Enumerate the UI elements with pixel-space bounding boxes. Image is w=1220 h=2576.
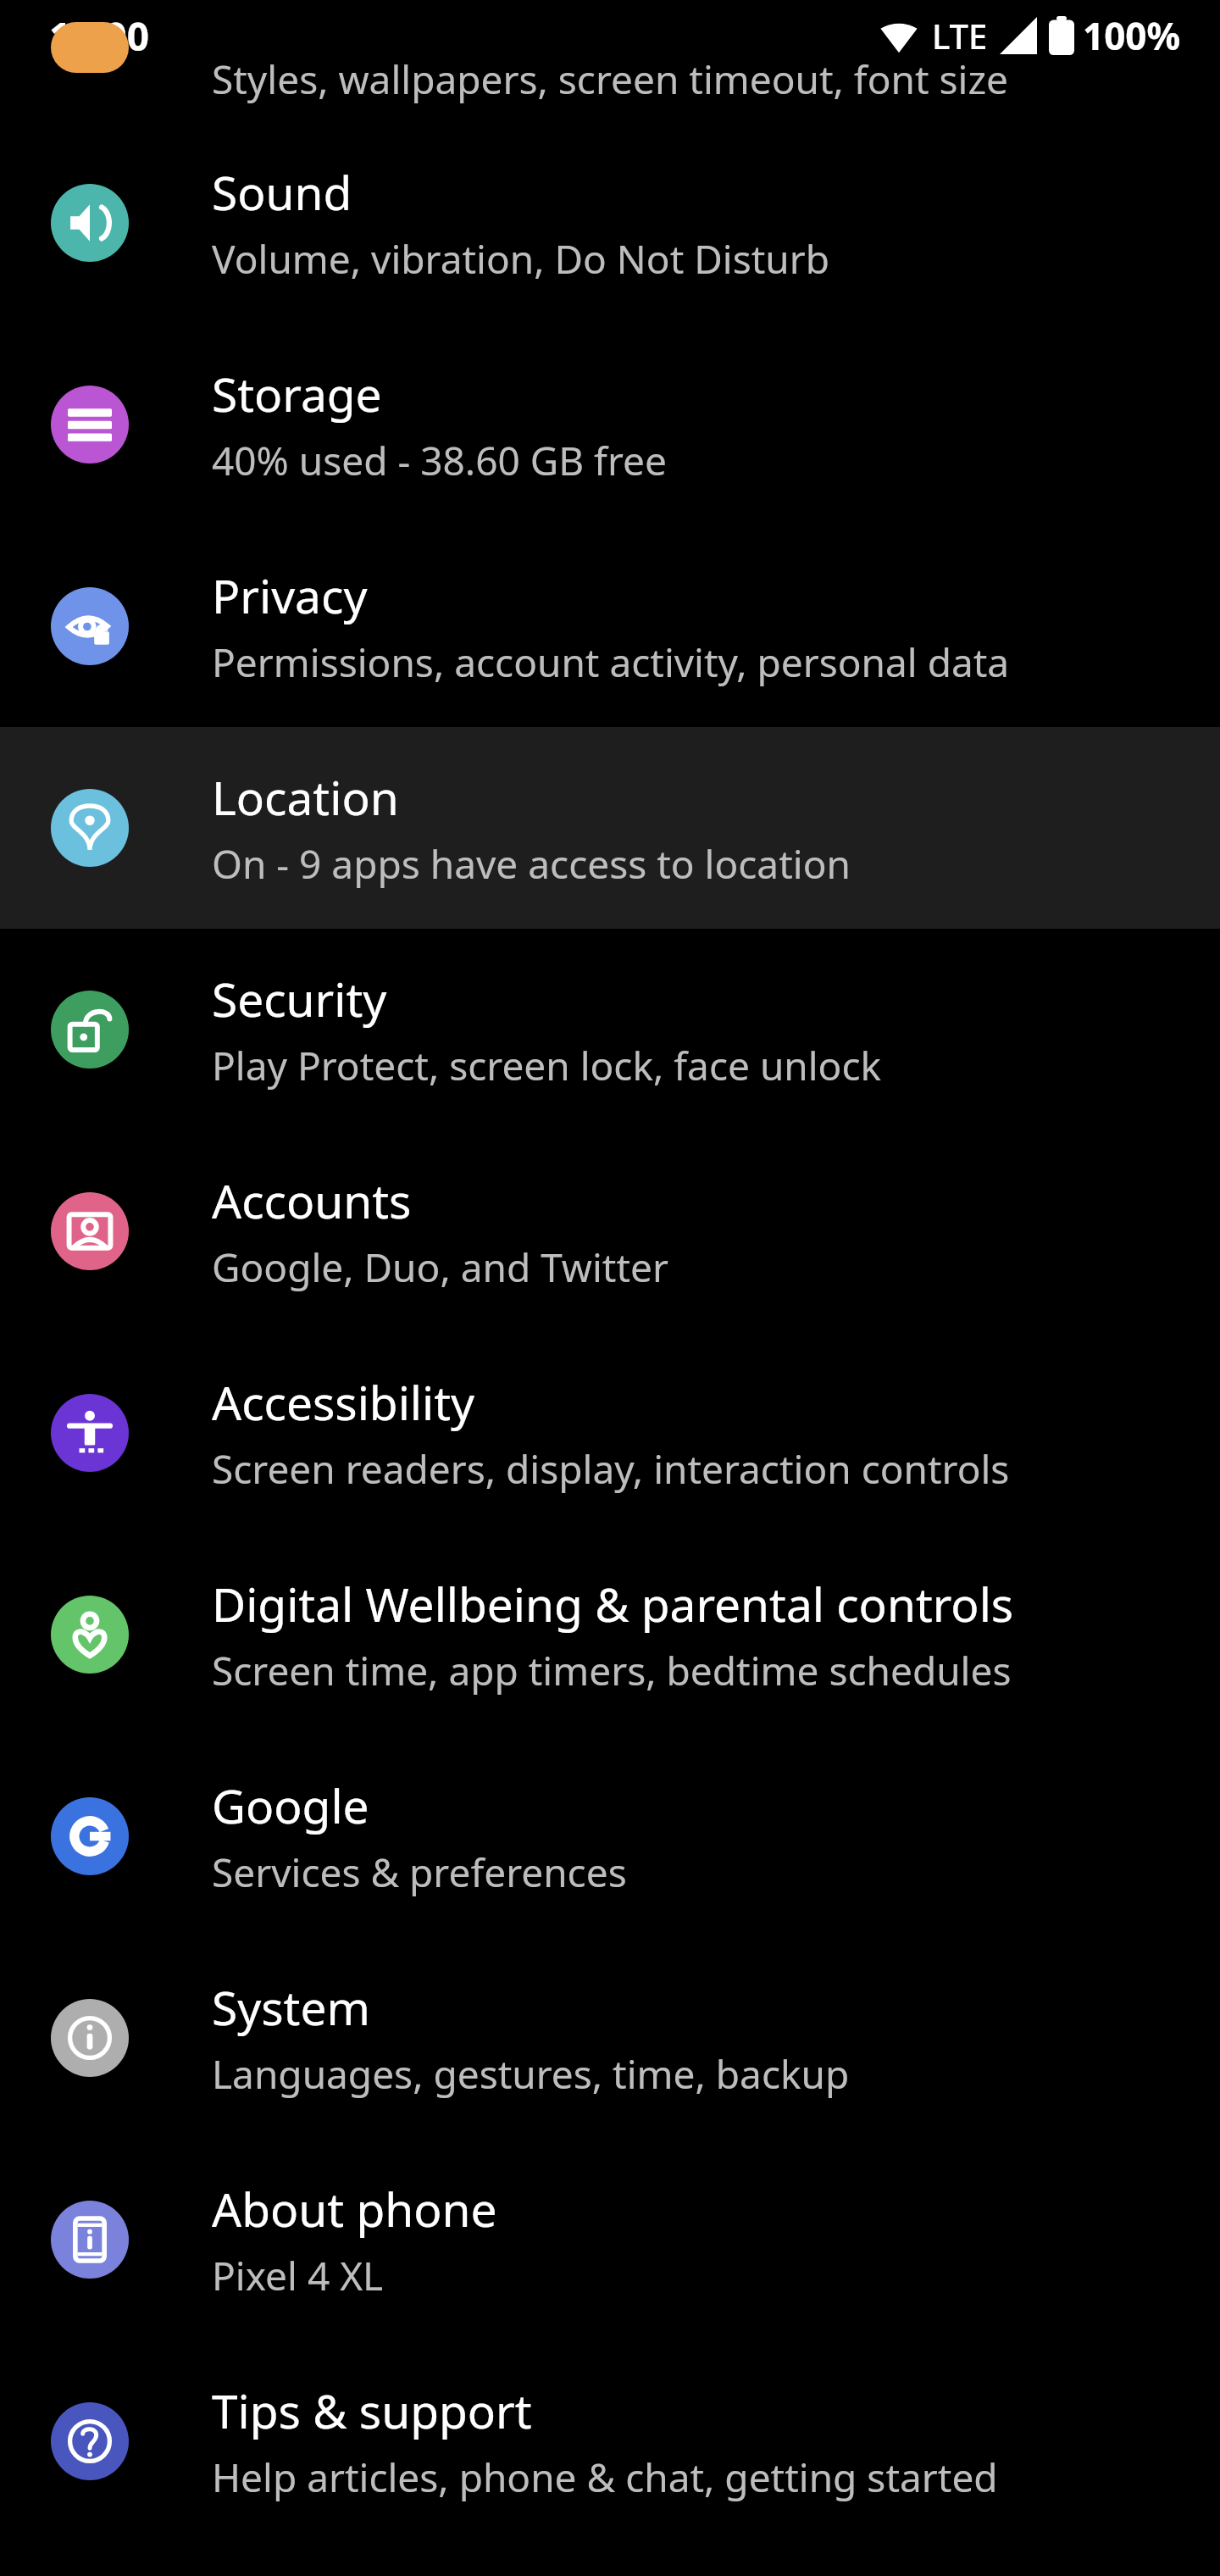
button[interactable]: Storage [0, 324, 1220, 525]
staticText: Services & preferences [212, 1846, 627, 1899]
staticText: Languages, gestures, time, backup [212, 2047, 850, 2101]
staticText: Tips & support [212, 2379, 532, 2442]
button[interactable]: Location [0, 727, 1220, 929]
staticText: Storage [212, 362, 382, 425]
staticText: 10:00 [49, 9, 150, 63]
staticText: Google, Duo, and Twitter [212, 1241, 668, 1294]
staticText: About phone [212, 2177, 497, 2240]
staticText: Play Protect, screen lock, face unlock [212, 1039, 882, 1092]
staticText: Accounts [212, 1169, 412, 1232]
button[interactable]: About phone [0, 2139, 1220, 2340]
staticText: Security [212, 967, 387, 1030]
staticText: Sound [212, 160, 352, 224]
button[interactable]: System [0, 1937, 1220, 2139]
button[interactable]: Accessibility [0, 1332, 1220, 1534]
button[interactable]: Accounts [0, 1130, 1220, 1332]
staticText: System [212, 1975, 370, 2039]
staticText: On - 9 apps have access to location [212, 837, 851, 891]
staticText: Accessibility [212, 1370, 475, 1434]
staticText: 100% [1083, 10, 1181, 61]
staticText: 40% used - 38.60 GB free [212, 434, 667, 487]
staticText: Pixel 4 XL [212, 2249, 384, 2302]
staticText: LTE [932, 13, 988, 58]
button[interactable]: Sound [0, 122, 1220, 324]
staticText: Screen time, app timers, bedtime schedul… [212, 1644, 1012, 1697]
button[interactable]: Tips & support [0, 2340, 1220, 2542]
staticText: Privacy [212, 563, 368, 627]
staticText: Digital Wellbeing & parental controls [212, 1572, 1014, 1635]
button[interactable]: Security [0, 929, 1220, 1130]
staticText: Volume, vibration, Do Not Disturb [212, 232, 830, 286]
button[interactable]: Styles, wallpapers, screen timeout, font… [0, 71, 1220, 122]
button[interactable]: Google [0, 1735, 1220, 1937]
staticText: Screen readers, display, interaction con… [212, 1442, 1010, 1496]
staticText: Help articles, phone & chat, getting sta… [212, 2451, 998, 2504]
staticText: Location [212, 765, 399, 829]
button[interactable]: Digital Wellbeing & parental controls [0, 1534, 1220, 1735]
staticText: Google [212, 1774, 369, 1837]
staticText: Permissions, account activity, personal … [212, 636, 1010, 689]
button[interactable]: Privacy [0, 525, 1220, 727]
staticText: Styles, wallpapers, screen timeout, font… [212, 53, 1008, 103]
